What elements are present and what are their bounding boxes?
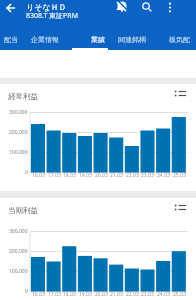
button[interactable]: [163, 0, 177, 16]
staticText: りそなＨＤ: [26, 2, 67, 12]
button[interactable]: [139, 0, 155, 16]
button[interactable]: [171, 85, 189, 98]
staticText: 経常利益: [8, 92, 38, 101]
staticText: 23.03: [141, 291, 154, 298]
staticText: 関連銘柄: [118, 35, 146, 44]
staticText: 板気配: [169, 35, 190, 44]
staticText: 19.03: [79, 172, 92, 179]
button[interactable]: [3, 0, 18, 16]
staticText: 18.03: [63, 172, 76, 179]
staticText: 当期利益: [8, 206, 38, 215]
staticText: 業績: [91, 35, 105, 44]
button[interactable]: 配当: [0, 30, 28, 49]
staticText: 22.03: [126, 291, 139, 298]
staticText: 21.03: [110, 291, 123, 298]
staticText: 200,000: [9, 248, 28, 255]
staticText: 18.03: [63, 291, 76, 298]
staticText: 16.03: [32, 291, 45, 298]
staticText: 100,000: [9, 149, 28, 156]
staticText: 24.03: [157, 172, 170, 179]
staticText: 300,000: [9, 109, 28, 116]
staticText: 300,000: [9, 228, 28, 235]
staticText: 20.03: [95, 291, 108, 298]
button[interactable]: [113, 0, 130, 16]
staticText: 21.03: [110, 172, 123, 179]
staticText: 23.03: [141, 172, 154, 179]
staticText: 25.03: [173, 172, 186, 179]
staticText: 100,000: [9, 268, 28, 275]
staticText: 配当: [4, 35, 18, 44]
staticText: 0: [25, 169, 28, 176]
staticText: 0: [25, 288, 28, 295]
staticText: 20.03: [95, 172, 108, 179]
button[interactable]: 企業情報: [28, 30, 62, 49]
staticText: 19.03: [79, 291, 92, 298]
staticText: 企業情報: [31, 35, 59, 44]
staticText: 25.03: [173, 291, 186, 298]
staticText: 200,000: [9, 129, 28, 136]
staticText: 17.03: [48, 291, 61, 298]
staticText: 16.03: [32, 172, 45, 179]
button[interactable]: 板気配: [162, 30, 196, 49]
staticText: 24.03: [157, 291, 170, 298]
button[interactable]: [171, 199, 189, 212]
button[interactable]: 業績: [81, 30, 115, 49]
button[interactable]: 関連銘柄: [115, 30, 149, 49]
staticText: 22.03: [126, 172, 139, 179]
staticText: 8308.T 東証PRM: [26, 11, 79, 20]
staticText: 17.03: [48, 172, 61, 179]
